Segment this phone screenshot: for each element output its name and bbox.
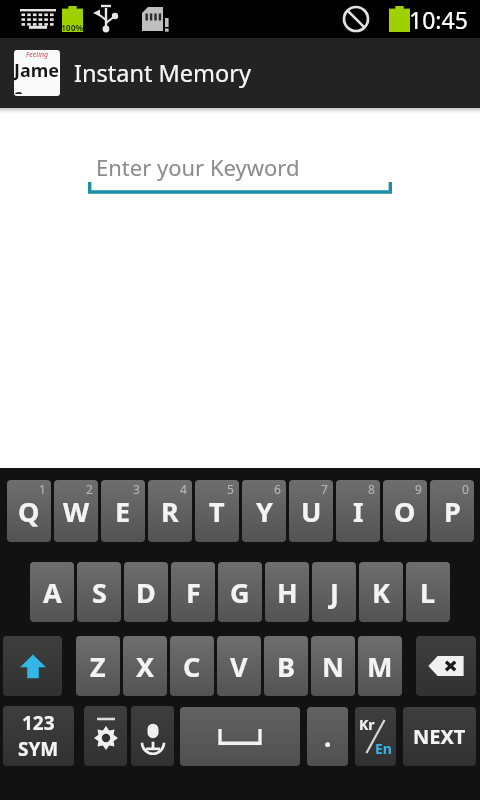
staticText: 7: [321, 481, 328, 497]
staticText: J: [330, 574, 339, 611]
staticText: Q: [18, 493, 40, 530]
staticText: N: [322, 648, 344, 685]
staticText: Enter your Keyword: [96, 152, 300, 182]
button[interactable]: Backspace: [416, 636, 476, 696]
button[interactable]: R: [148, 480, 192, 542]
button[interactable]: Shift: [3, 636, 62, 696]
button[interactable]: Language Kr En: [355, 707, 396, 766]
staticText: F: [186, 574, 201, 611]
staticText: I: [353, 493, 364, 530]
staticText: P: [444, 493, 461, 530]
staticText: O: [394, 493, 416, 530]
button[interactable]: W: [54, 480, 98, 542]
staticText: Y: [256, 493, 273, 530]
staticText: Feeling: [26, 50, 49, 60]
staticText: L: [420, 574, 436, 611]
button[interactable]: Voice input: [131, 706, 174, 766]
staticText: G: [230, 574, 250, 611]
button[interactable]: NEXT: [403, 707, 476, 766]
staticText: X: [136, 648, 155, 685]
staticText: 1: [39, 481, 46, 497]
button[interactable]: T: [195, 480, 239, 542]
button[interactable]: I: [336, 480, 380, 542]
button[interactable]: M: [358, 636, 402, 696]
staticText: 100%: [61, 22, 84, 34]
button[interactable]: S: [77, 562, 121, 622]
staticText: 4: [180, 481, 187, 497]
staticText: 10:45: [409, 4, 468, 35]
button[interactable]: H: [265, 562, 309, 622]
button[interactable]: V: [217, 636, 261, 696]
button[interactable]: K: [359, 562, 403, 622]
button[interactable]: L: [406, 562, 450, 622]
button[interactable]: .: [307, 707, 348, 766]
button[interactable]: J: [312, 562, 356, 622]
button[interactable]: Q: [7, 480, 51, 542]
staticText: H: [277, 574, 298, 611]
staticText: Kr: [359, 715, 375, 734]
button[interactable]: E: [101, 480, 145, 542]
button[interactable]: Space: [180, 707, 300, 766]
button[interactable]: Y: [242, 480, 286, 542]
staticText: NEXT: [413, 723, 466, 750]
staticText: James: [14, 58, 60, 94]
button[interactable]: 123: [3, 706, 74, 766]
button[interactable]: N: [311, 636, 355, 696]
button[interactable]: B: [264, 636, 308, 696]
staticText: 5: [227, 481, 234, 497]
button[interactable]: F: [171, 562, 215, 622]
staticText: A: [43, 574, 62, 611]
staticText: 9: [415, 481, 422, 497]
button[interactable]: U: [289, 480, 333, 542]
button[interactable]: Enter your Keyword: [88, 148, 392, 204]
staticText: Instant Memory: [74, 57, 251, 89]
button[interactable]: G: [218, 562, 262, 622]
staticText: T: [209, 493, 225, 530]
staticText: U: [301, 493, 322, 530]
staticText: C: [183, 648, 201, 685]
button[interactable]: D: [124, 562, 168, 622]
button[interactable]: Z: [76, 636, 120, 696]
staticText: .: [324, 719, 332, 754]
staticText: 123: [22, 710, 55, 736]
staticText: E: [115, 493, 131, 530]
staticText: 3: [133, 481, 140, 497]
button[interactable]: X: [123, 636, 167, 696]
staticText: 2: [86, 481, 93, 497]
button[interactable]: O: [383, 480, 427, 542]
button[interactable]: App icon: [14, 50, 60, 96]
staticText: M: [367, 648, 393, 685]
button[interactable]: Settings: [84, 706, 127, 766]
button[interactable]: P: [430, 480, 474, 542]
staticText: SYM: [18, 736, 59, 762]
staticText: En: [375, 739, 392, 758]
staticText: W: [63, 493, 90, 530]
staticText: 0: [462, 481, 469, 497]
staticText: S: [92, 574, 107, 611]
staticText: R: [161, 493, 179, 530]
staticText: 6: [274, 481, 281, 497]
staticText: V: [230, 648, 248, 685]
staticText: D: [136, 574, 156, 611]
staticText: B: [277, 648, 295, 685]
button[interactable]: C: [170, 636, 214, 696]
staticText: 8: [368, 481, 375, 497]
button[interactable]: A: [30, 562, 74, 622]
staticText: Z: [90, 648, 106, 685]
staticText: K: [372, 574, 390, 611]
